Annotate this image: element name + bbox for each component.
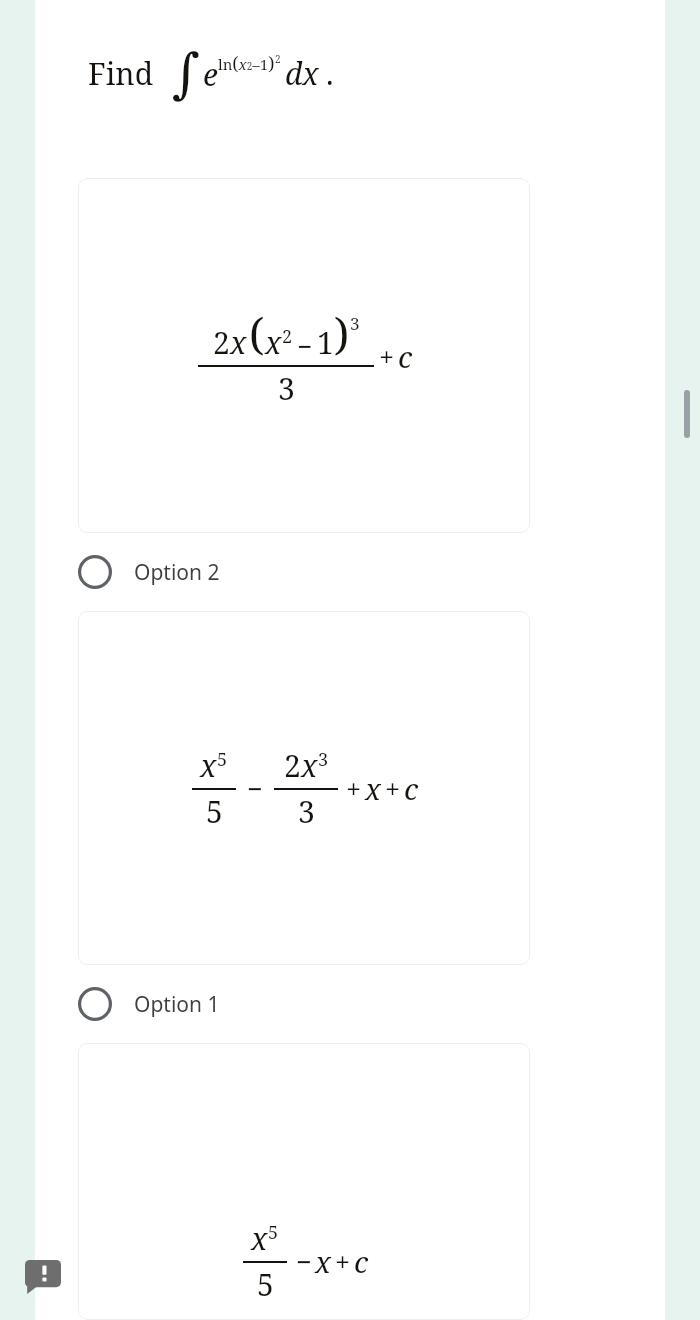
button[interactable]: Report a problem [22,1256,64,1298]
staticText: + [385,770,401,807]
staticText: ln(x2–1) [218,51,275,76]
staticText: 2 [275,52,281,66]
staticText: 2 [213,322,230,363]
staticText: x [230,322,247,363]
staticText: x [251,1218,268,1259]
staticText: − [247,770,263,807]
staticText: 5 [268,1220,279,1245]
button[interactable]: 2 [78,178,530,533]
staticText: ( [249,303,265,363]
button[interactable]: x [78,611,530,965]
staticText: 3 [298,791,315,832]
staticText: c [398,337,413,376]
staticText: e [203,54,218,95]
staticText: + [346,770,362,807]
staticText: + [379,338,395,375]
staticText: dx [285,53,319,94]
staticText: 3 [278,368,295,409]
staticText: Option 1 [134,990,220,1019]
staticText: x [315,1242,331,1281]
staticText: ) [334,303,350,363]
staticText: x [200,745,217,786]
staticText: 2 [282,324,293,349]
button[interactable]: Option 2 [0,545,700,599]
staticText: 2 [284,745,301,786]
staticText: − [296,1243,312,1280]
staticText: . [326,53,334,94]
staticText: 3 [318,747,329,772]
staticText: x [265,322,282,363]
button[interactable]: Option 1 [0,977,700,1031]
staticText: x [301,745,318,786]
staticText: 5 [257,1264,274,1305]
staticText: Option 2 [134,558,220,587]
staticText: c [404,769,419,808]
staticText: ∫ [172,42,201,104]
staticText: 5 [206,791,223,832]
staticText: c [354,1242,369,1281]
staticText: 1 [317,322,334,363]
staticText: − [297,328,313,363]
staticText: 3 [350,312,360,335]
staticText: 5 [217,747,228,772]
button[interactable]: x [78,1043,530,1320]
staticText: + [335,1243,351,1280]
staticText: Find [88,53,154,94]
staticText: x [365,769,381,808]
